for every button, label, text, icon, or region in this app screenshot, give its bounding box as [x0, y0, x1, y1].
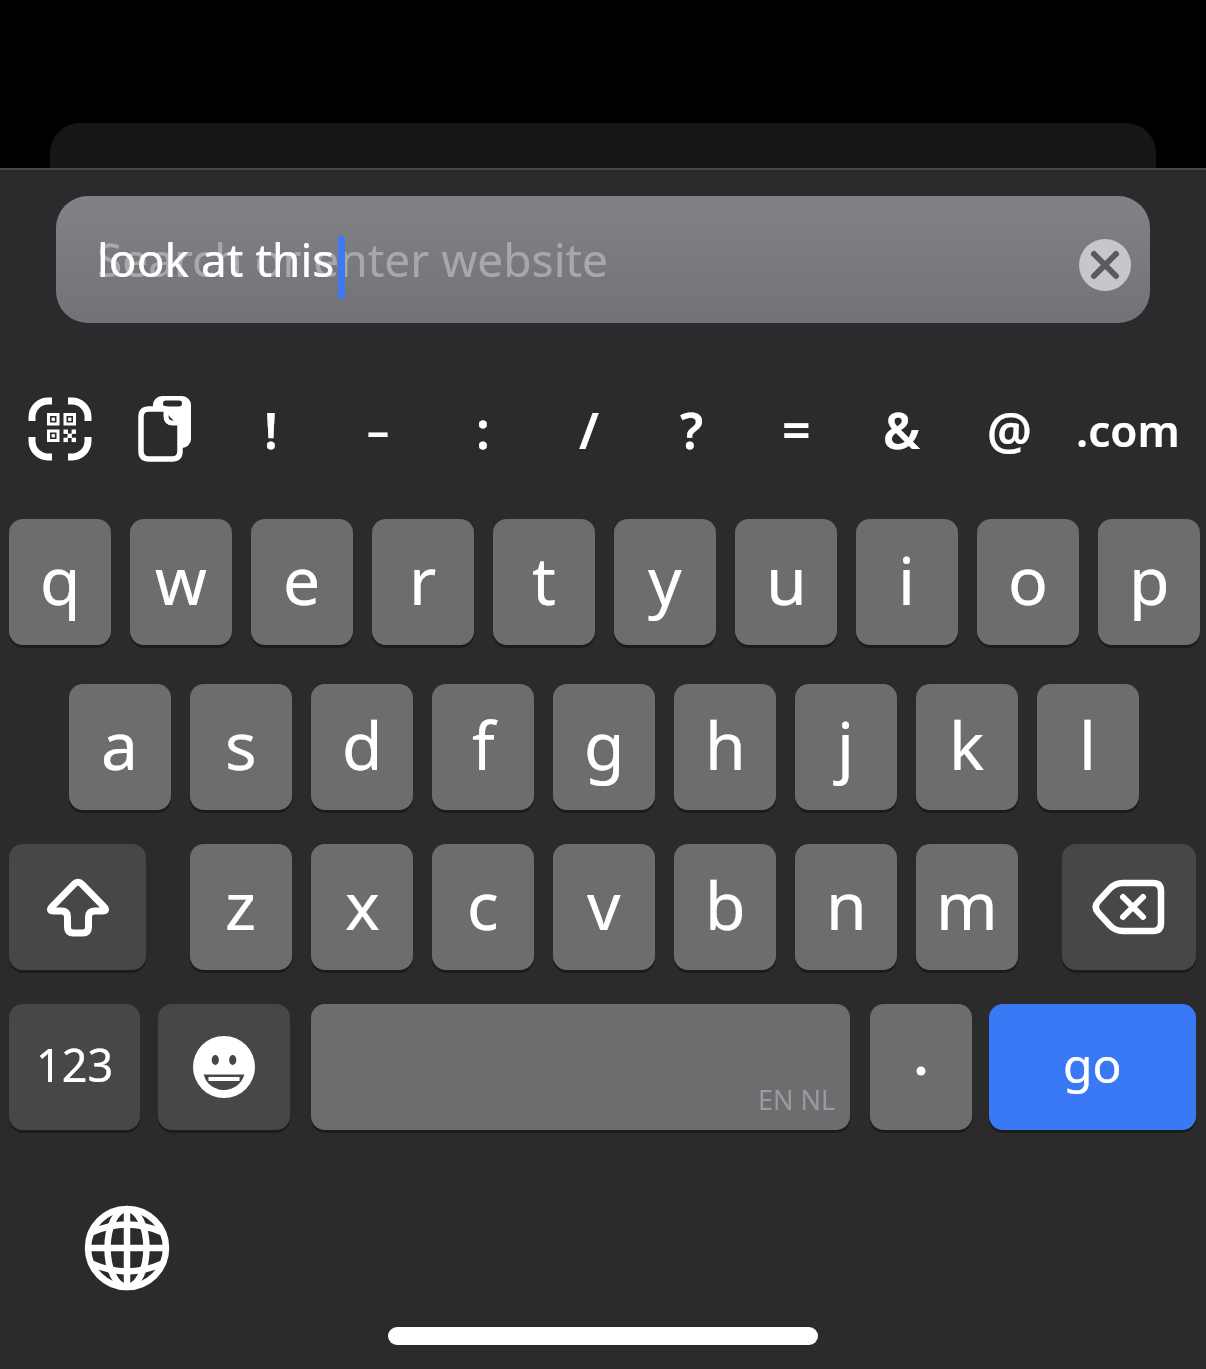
- staticText: m: [936, 859, 998, 949]
- button[interactable]: –: [328, 385, 428, 475]
- button[interactable]: h: [674, 684, 776, 810]
- button[interactable]: [1062, 844, 1196, 970]
- button[interactable]: /: [539, 385, 639, 475]
- staticText: f: [472, 699, 495, 789]
- staticText: s: [225, 699, 257, 789]
- staticText: w: [155, 534, 207, 624]
- staticText: o: [1008, 534, 1048, 624]
- button[interactable]: [9, 844, 146, 970]
- button[interactable]: [1079, 239, 1131, 291]
- button[interactable]: k: [916, 684, 1018, 810]
- button[interactable]: x: [311, 844, 413, 970]
- button[interactable]: go: [989, 1004, 1196, 1130]
- button[interactable]: g: [553, 684, 655, 810]
- button[interactable]: r: [372, 519, 474, 645]
- button[interactable]: @: [959, 385, 1059, 475]
- staticText: i: [898, 534, 916, 624]
- staticText: v: [587, 859, 621, 949]
- button[interactable]: m: [916, 844, 1018, 970]
- button[interactable]: l: [1037, 684, 1139, 810]
- button[interactable]: [28, 397, 92, 461]
- button[interactable]: !: [221, 385, 321, 475]
- staticText: &: [883, 396, 921, 464]
- button[interactable]: =: [746, 385, 846, 475]
- button[interactable]: [85, 1206, 169, 1290]
- staticText: d: [342, 699, 383, 789]
- button[interactable]: b: [674, 844, 776, 970]
- button[interactable]: EN NL: [311, 1004, 850, 1130]
- button[interactable]: y: [614, 519, 716, 645]
- staticText: =: [782, 396, 811, 464]
- staticText: 123: [36, 1034, 114, 1095]
- button[interactable]: o: [977, 519, 1079, 645]
- staticText: –: [367, 400, 389, 460]
- staticText: r: [409, 534, 437, 624]
- button[interactable]: n: [795, 844, 897, 970]
- staticText: a: [101, 699, 139, 789]
- staticText: /: [579, 396, 599, 464]
- button[interactable]: d: [311, 684, 413, 810]
- staticText: !: [264, 396, 278, 464]
- button[interactable]: ?: [642, 385, 742, 475]
- button[interactable]: j: [795, 684, 897, 810]
- staticText: ?: [680, 396, 704, 464]
- button[interactable]: .com: [1063, 385, 1193, 475]
- staticText: z: [225, 859, 257, 949]
- button[interactable]: [158, 1004, 290, 1130]
- button[interactable]: a: [69, 684, 171, 810]
- button[interactable]: z: [190, 844, 292, 970]
- button[interactable]: Search or enter website: [56, 196, 1150, 323]
- staticText: go: [1063, 1032, 1122, 1097]
- button[interactable]: u: [735, 519, 837, 645]
- staticText: q: [40, 534, 81, 624]
- staticText: h: [705, 699, 746, 789]
- staticText: k: [949, 699, 985, 789]
- staticText: e: [283, 534, 321, 624]
- button[interactable]: e: [251, 519, 353, 645]
- button[interactable]: q: [9, 519, 111, 645]
- button[interactable]: s: [190, 684, 292, 810]
- staticText: c: [467, 859, 499, 949]
- button[interactable]: [131, 392, 195, 464]
- button[interactable]: &: [852, 385, 952, 475]
- button[interactable]: v: [553, 844, 655, 970]
- staticText: .com: [1076, 400, 1180, 460]
- button[interactable]: c: [432, 844, 534, 970]
- button[interactable]: p: [1098, 519, 1200, 645]
- staticText: x: [345, 859, 380, 949]
- staticText: l: [1079, 699, 1097, 789]
- button[interactable]: i: [856, 519, 958, 645]
- button[interactable]: 123: [9, 1004, 140, 1130]
- staticText: look at this: [97, 228, 335, 291]
- staticText: g: [584, 699, 625, 789]
- button[interactable]: w: [130, 519, 232, 645]
- staticText: u: [766, 534, 807, 624]
- button[interactable]: [870, 1004, 972, 1130]
- staticText: n: [826, 859, 867, 949]
- staticText: y: [648, 534, 682, 624]
- staticText: j: [837, 699, 855, 789]
- staticText: t: [532, 534, 556, 624]
- button[interactable]: t: [493, 519, 595, 645]
- staticText: @: [987, 396, 1032, 464]
- staticText: :: [476, 396, 490, 464]
- staticText: b: [705, 859, 746, 949]
- button[interactable]: f: [432, 684, 534, 810]
- button[interactable]: :: [433, 385, 533, 475]
- staticText: p: [1129, 534, 1170, 624]
- staticText: EN NL: [758, 1081, 836, 1118]
- staticText: Search or enter website: [97, 228, 609, 291]
